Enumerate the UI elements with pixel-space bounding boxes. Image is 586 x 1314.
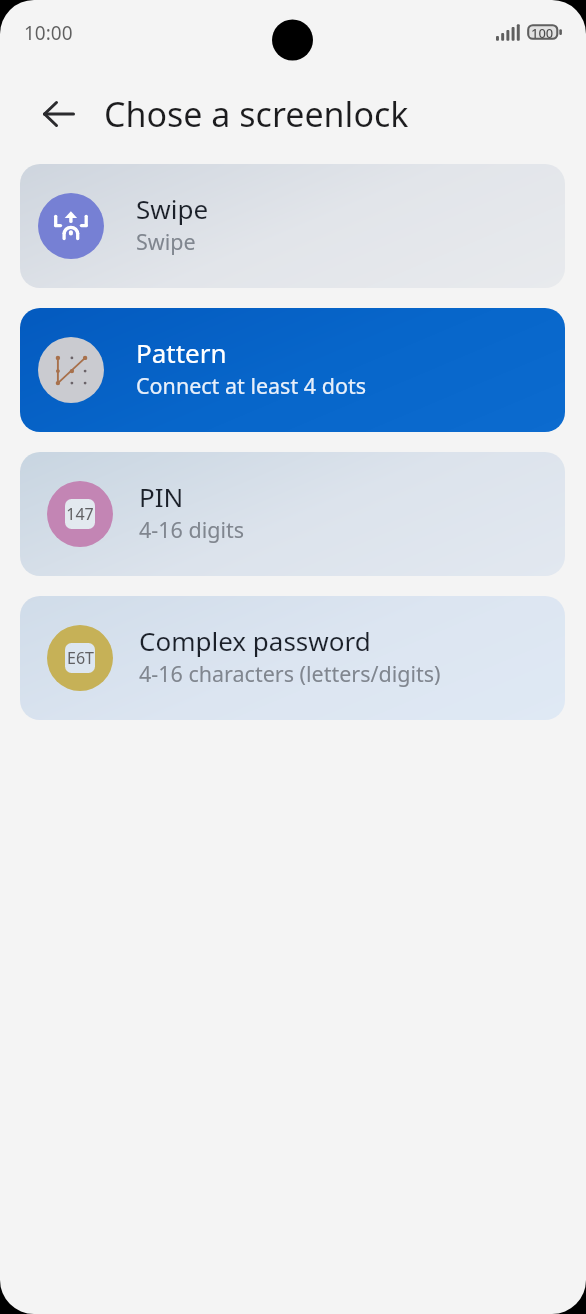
staticText: Complex password <box>139 623 371 658</box>
button[interactable]: Swipe <box>20 164 565 288</box>
button[interactable]: Back <box>34 90 82 138</box>
staticText: 100 <box>531 24 554 40</box>
staticText: 4-16 characters (letters/digits) <box>139 659 441 688</box>
staticText: Swipe <box>136 227 196 256</box>
staticText: 10:00 <box>24 20 73 46</box>
staticText: Swipe <box>136 191 209 226</box>
staticText: 147 <box>66 503 94 525</box>
staticText: Chose a screenlock <box>104 91 409 137</box>
button[interactable]: 147 <box>20 452 565 576</box>
staticText: PIN <box>139 479 184 514</box>
button[interactable]: Pattern <box>20 308 565 432</box>
staticText: Pattern <box>136 335 227 370</box>
staticText: 4-16 digits <box>139 515 245 544</box>
staticText: Connect at least 4 dots <box>136 371 366 400</box>
staticText: E6T <box>67 647 94 669</box>
button[interactable]: E6T <box>20 596 565 720</box>
